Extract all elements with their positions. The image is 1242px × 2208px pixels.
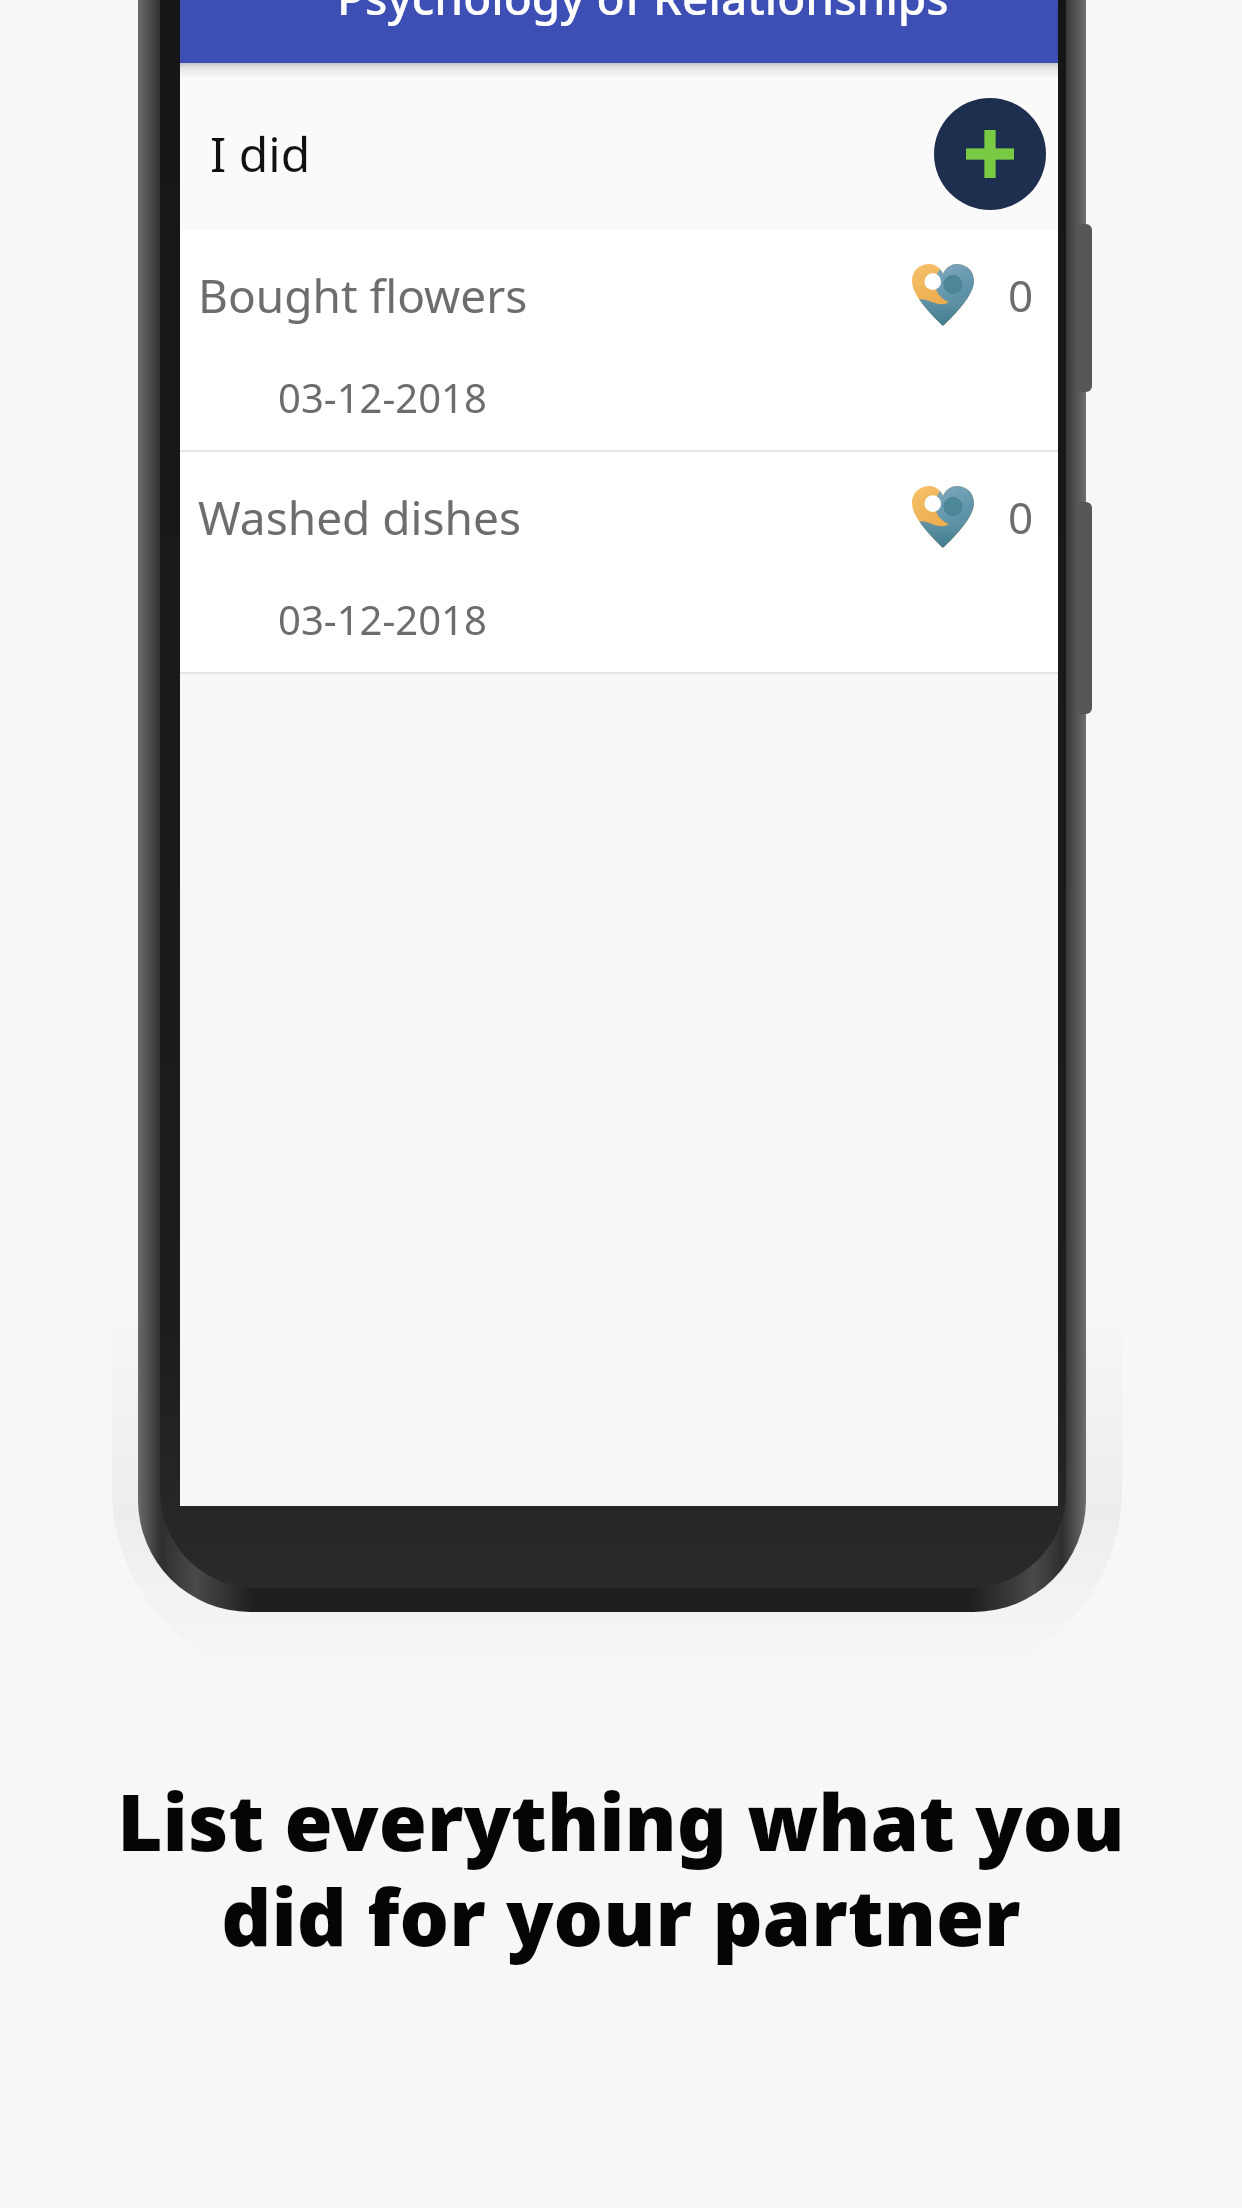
button[interactable]: Add entry [934,98,1046,210]
staticText: Bought flowers [198,264,912,327]
button[interactable]: Bought flowers [180,230,1058,450]
staticText: 03-12-2018 [278,592,487,646]
staticText: 0 [1008,265,1034,325]
staticText: 0 [1008,487,1034,547]
staticText: 03-12-2018 [278,370,487,424]
staticText: I did [210,121,311,186]
button[interactable]: Washed dishes [180,452,1058,672]
staticText: List everything what you did for your pa… [54,1768,1188,1969]
staticText: Washed dishes [198,486,912,549]
staticText: Psychology of Relationships [337,0,949,29]
